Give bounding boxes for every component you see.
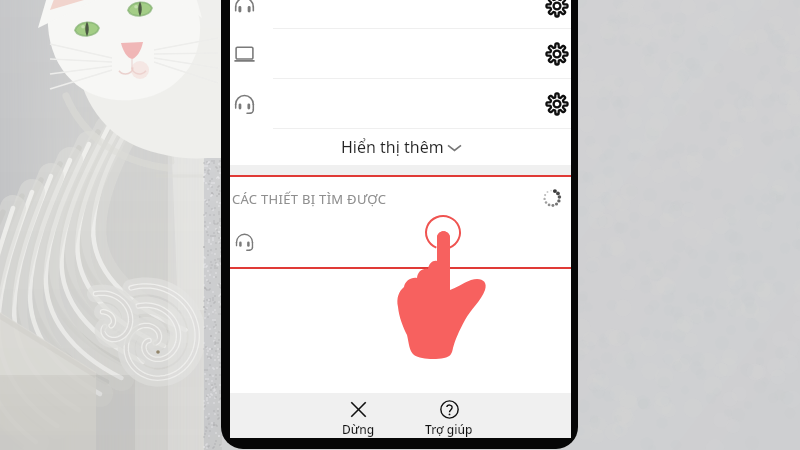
button[interactable]: Hiển thị thêm [230,129,571,165]
button[interactable]: Dừng [334,393,383,437]
button[interactable]: Settings [545,92,569,116]
button[interactable]: Settings [545,42,569,66]
button[interactable]: Trợ giúp [417,393,481,437]
button[interactable]: Settings [230,79,571,128]
button[interactable]: Settings [230,0,571,28]
button[interactable] [230,215,571,267]
staticText: Trợ giúp [425,421,473,437]
button[interactable]: Settings [545,0,569,18]
staticText: Dừng [342,421,375,437]
staticText: Hiển thị thêm [341,136,444,158]
staticText: CÁC THIẾT BỊ TÌM ĐƯỢC [232,190,387,208]
button[interactable]: Settings [230,29,571,78]
